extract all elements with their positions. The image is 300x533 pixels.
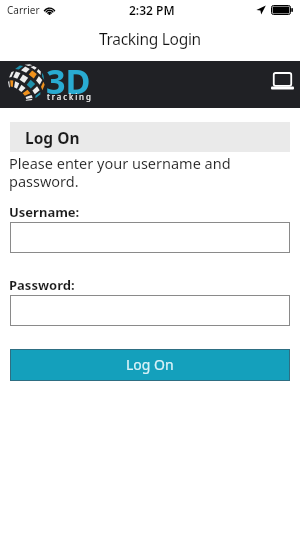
staticText: Username: [9,203,80,221]
staticText: Carrier [7,3,40,17]
staticText: Tracking Login [99,28,201,49]
button[interactable]: Desktop site [269,68,295,94]
button[interactable]: Log On [10,349,290,381]
button[interactable] [10,222,290,253]
button[interactable] [10,295,290,326]
staticText: 3D [46,58,91,104]
staticText: Log On [126,355,174,374]
staticText: Password: [9,276,75,294]
staticText: 2:32 PM [129,2,175,18]
staticText: tracking [47,91,93,102]
staticText: Please enter your username and password. [9,153,254,191]
button[interactable]: Log On [10,122,290,152]
staticText: Log On [25,127,80,148]
